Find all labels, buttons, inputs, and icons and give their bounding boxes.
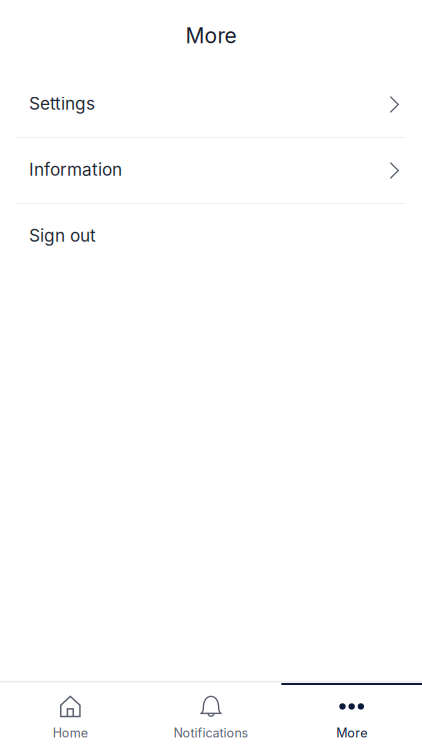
button[interactable]: Settings <box>0 71 422 136</box>
staticText: More <box>336 725 367 741</box>
staticText: Information <box>29 159 122 180</box>
staticText: Settings <box>29 93 95 114</box>
staticText: Notifications <box>173 725 248 741</box>
button[interactable]: Information <box>0 137 422 202</box>
button[interactable]: Home <box>0 683 141 750</box>
staticText: Sign out <box>29 225 96 246</box>
button[interactable]: Notifications <box>141 683 281 750</box>
button[interactable]: More <box>281 683 422 750</box>
button[interactable]: Sign out <box>0 203 422 268</box>
staticText: Home <box>53 725 88 741</box>
staticText: More <box>185 23 236 48</box>
